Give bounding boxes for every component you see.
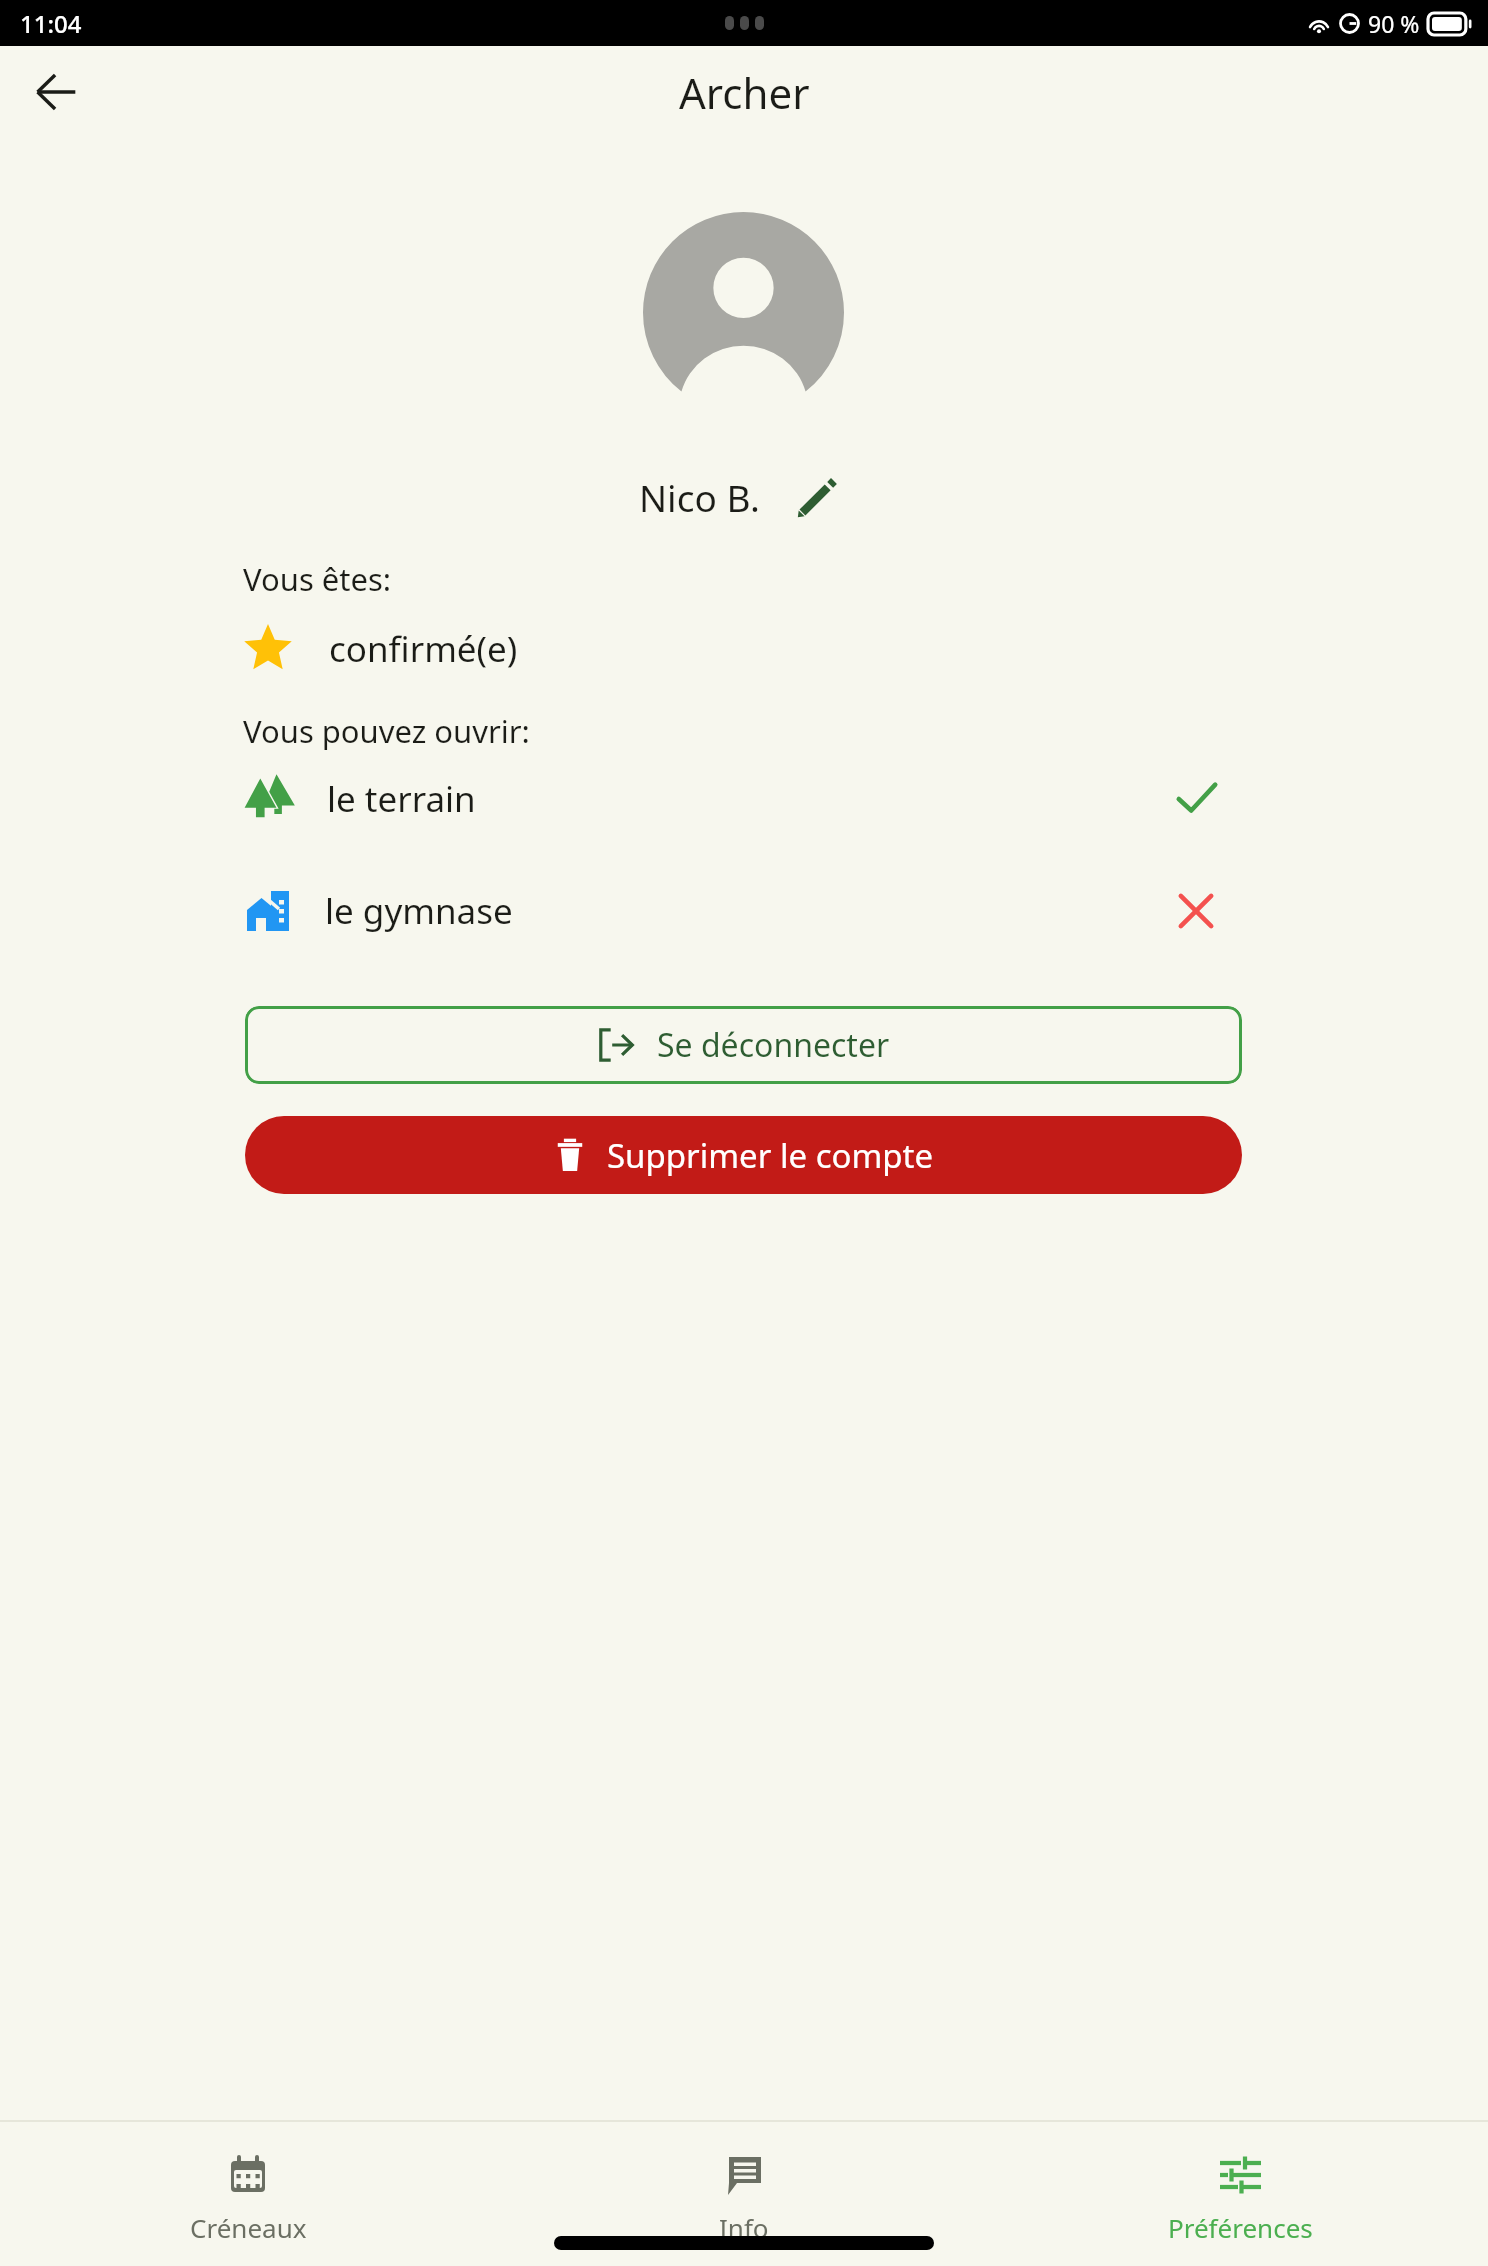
button[interactable]: Info [496, 2122, 992, 2266]
staticText: Supprimer le compte [607, 1133, 934, 1178]
staticText: confirmé(e) [329, 625, 518, 673]
button[interactable]: le terrain [243, 758, 1243, 840]
button[interactable]: Modifier le nom [787, 466, 849, 528]
staticText: Préférences [1168, 2210, 1313, 2245]
staticText: Archer [679, 64, 810, 121]
button[interactable]: Préférences [992, 2122, 1488, 2266]
other: Non autorisé [1173, 888, 1219, 934]
staticText: le gymnase [325, 887, 513, 935]
button[interactable]: Retour [14, 50, 98, 134]
button[interactable]: Se déconnecter [245, 1006, 1242, 1084]
button[interactable]: Supprimer le compte [245, 1116, 1242, 1194]
staticText: Créneaux [190, 2210, 307, 2245]
staticText: Se déconnecter [657, 1023, 890, 1067]
button[interactable]: le gymnase [243, 870, 1243, 952]
staticText: Info [719, 2210, 769, 2245]
staticText: 11:04 [20, 7, 82, 40]
staticText: Nico B. [639, 472, 761, 522]
staticText: 90 % [1368, 8, 1420, 39]
button[interactable]: Créneaux [0, 2122, 496, 2266]
staticText: le terrain [327, 775, 476, 823]
staticText: Vous pouvez ouvrir: [243, 710, 530, 752]
staticText: Vous êtes: [243, 558, 392, 600]
other: Autorisé [1173, 775, 1221, 823]
